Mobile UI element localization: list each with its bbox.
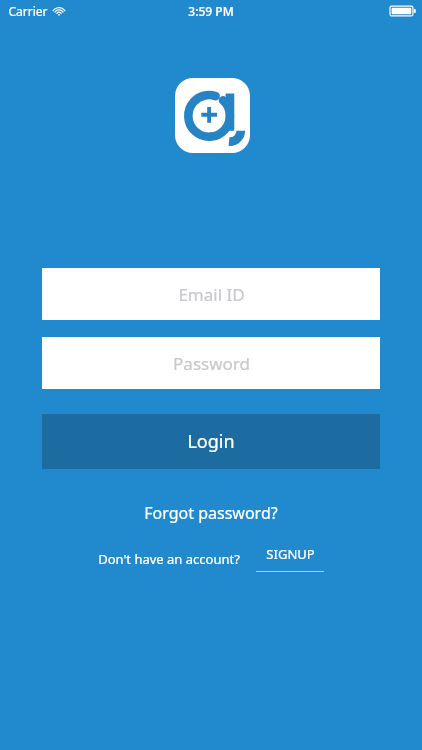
staticText: SIGNUP (266, 545, 315, 563)
staticText: 3:59 PM (188, 3, 234, 19)
staticText: Password (173, 352, 250, 375)
button[interactable]: Password (42, 337, 380, 389)
button[interactable]: Login (42, 414, 380, 469)
staticText: Email ID (178, 283, 245, 306)
button[interactable]: SIGNUP (256, 545, 324, 572)
staticText: Don't have an account? (98, 550, 240, 568)
staticText: Carrier (8, 3, 48, 19)
button[interactable]: Email ID (42, 268, 380, 320)
staticText: Login (187, 429, 235, 454)
staticText: Forgot password? (144, 502, 278, 524)
button[interactable]: Forgot password? (134, 498, 288, 528)
